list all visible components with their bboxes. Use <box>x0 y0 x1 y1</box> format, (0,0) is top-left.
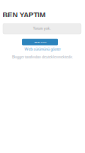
staticText: Yorum yok. <box>33 27 51 31</box>
staticText: Web sürümünü göster <box>24 47 60 51</box>
staticText: Yorum Ekle <box>34 41 46 43</box>
button[interactable]: Web sürümünü göster <box>0 46 85 52</box>
button[interactable]: Yorum Ekle <box>22 39 58 45</box>
staticText: Blogger tarafından desteklenmektedir. <box>12 55 73 59</box>
staticText: BEN YAPTIM <box>2 11 45 19</box>
